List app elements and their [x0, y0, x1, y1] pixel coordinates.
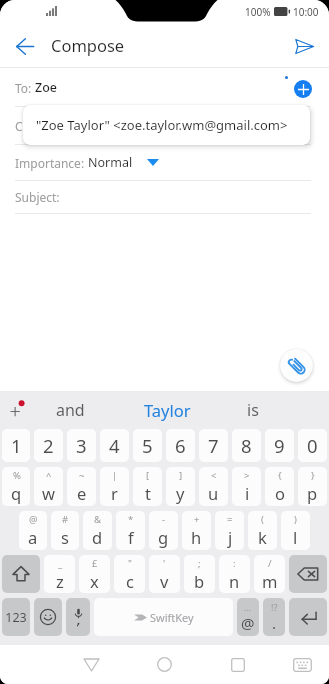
staticText: z [56, 570, 64, 592]
button[interactable]: ( [248, 511, 277, 550]
button[interactable]: Space [94, 598, 233, 636]
staticText: > [244, 469, 250, 482]
button[interactable]: : [219, 555, 250, 593]
button[interactable]: Back [8, 29, 42, 63]
button[interactable]: > [232, 467, 261, 506]
button[interactable]: 5 [133, 429, 162, 462]
staticText: q [11, 482, 22, 504]
staticText: n [229, 570, 240, 592]
button[interactable]: Home [142, 645, 186, 684]
staticText: ( [261, 513, 264, 526]
button[interactable]: Send [287, 29, 321, 63]
button[interactable]: ^ [34, 467, 63, 506]
staticText: : [233, 557, 236, 570]
button[interactable]: Cc/Bcc: [0, 107, 329, 144]
staticText: e [77, 482, 87, 504]
button[interactable]: Backspace [289, 555, 327, 593]
button[interactable]: 6 [166, 429, 195, 462]
button[interactable]: ] [166, 467, 195, 506]
button[interactable]: 123 [2, 598, 30, 636]
button[interactable]: Recent apps [216, 645, 260, 684]
button[interactable]: } [298, 467, 327, 506]
button[interactable]: ) [281, 511, 310, 550]
button[interactable]: Voice input [66, 598, 90, 636]
button[interactable]: * [116, 511, 145, 550]
staticText: is [247, 399, 259, 421]
button[interactable]: 7 [199, 429, 228, 462]
button[interactable]: = [215, 511, 244, 550]
button[interactable]: % [2, 467, 30, 506]
staticText: { [278, 469, 282, 482]
button[interactable]: " [114, 555, 145, 593]
button[interactable]: [ [133, 467, 162, 506]
staticText: 9 [274, 433, 285, 458]
button[interactable]: / [254, 555, 285, 593]
button[interactable]: "Zoe Taylor" <zoe.taylor.wm@gmail.com> [23, 105, 310, 145]
button[interactable]: < [199, 467, 228, 506]
button[interactable]: Shift [2, 555, 40, 593]
button[interactable]: 0 [298, 429, 327, 462]
button[interactable]: { [265, 467, 294, 506]
staticText: 2 [43, 433, 54, 458]
staticText: b [194, 570, 205, 592]
button[interactable]: 8 [232, 429, 261, 462]
button[interactable]: 2 [34, 429, 63, 462]
button[interactable]: ... [237, 598, 259, 636]
staticText: ' [163, 557, 166, 570]
button[interactable]: - [149, 511, 178, 550]
staticText: + [194, 513, 200, 526]
staticText: ~ [79, 469, 85, 482]
button[interactable]: and [27, 391, 113, 429]
staticText: Taylor [144, 399, 191, 421]
staticText: c [126, 570, 134, 592]
staticText: g [158, 526, 169, 548]
staticText: * [128, 513, 134, 526]
staticText: s [61, 526, 69, 548]
button[interactable]: Hide keyboard [280, 645, 324, 684]
staticText: 8 [241, 433, 252, 458]
button[interactable]: _ [44, 555, 75, 593]
button[interactable]: Subject: [0, 181, 329, 213]
staticText: Normal [88, 154, 133, 171]
staticText: ^ [46, 469, 52, 482]
button[interactable]: Attach file [280, 349, 313, 382]
staticText: m [262, 570, 278, 592]
button[interactable]: Importance: [0, 145, 329, 180]
button[interactable]: 4 [100, 429, 129, 462]
staticText: f [128, 526, 134, 548]
button[interactable]: Back [69, 645, 113, 684]
staticText: / [268, 557, 272, 570]
button[interactable]: Enter [289, 598, 327, 636]
staticText: !? [271, 601, 278, 613]
button[interactable]: £ [79, 555, 110, 593]
staticText: To: [15, 80, 35, 96]
button[interactable]: is [210, 391, 296, 429]
button[interactable]: 1 [2, 429, 30, 462]
button[interactable]: !? [263, 598, 285, 636]
staticText: ; [198, 557, 201, 570]
staticText: . [272, 613, 277, 633]
button[interactable]: Emoji [34, 598, 62, 636]
button[interactable]: | [100, 467, 129, 506]
button[interactable]: ' [149, 555, 180, 593]
staticText: ] [179, 469, 183, 482]
button[interactable]: 3 [67, 429, 96, 462]
staticText: | [112, 469, 118, 482]
button[interactable]: & [83, 511, 112, 550]
button[interactable]: 9 [265, 429, 294, 462]
staticText: # [62, 513, 69, 526]
button[interactable]: Taylor [124, 391, 210, 429]
button[interactable]: + [182, 511, 211, 550]
staticText: Compose [51, 34, 125, 56]
staticText: 6 [175, 433, 186, 458]
button[interactable]: More options [4, 396, 29, 421]
staticText: Importance: [15, 155, 88, 171]
staticText: "Zoe Taylor" <zoe.taylor.wm@gmail.com> [36, 116, 288, 134]
staticText: l [293, 526, 298, 548]
button[interactable]: ~ [67, 467, 96, 506]
button[interactable]: To: [0, 68, 329, 106]
button[interactable]: @ [19, 511, 47, 550]
button[interactable]: Add recipient [294, 80, 312, 98]
button[interactable]: ; [184, 555, 215, 593]
button[interactable]: # [51, 511, 79, 550]
